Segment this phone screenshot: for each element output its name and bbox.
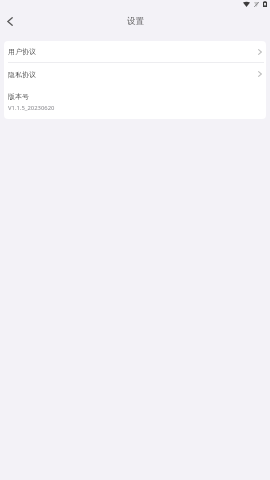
staticText: 版本号: [8, 92, 29, 101]
staticText: V1.1.5_20230620: [8, 104, 55, 112]
button[interactable]: Back: [0, 10, 19, 32]
staticText: 隐私协议: [8, 70, 36, 79]
button[interactable]: 版本号: [4, 85, 266, 119]
staticText: 用户协议: [8, 47, 36, 56]
staticText: 设置: [127, 16, 144, 27]
button[interactable]: 隐私协议: [4, 63, 266, 85]
button[interactable]: 用户协议: [4, 41, 266, 62]
